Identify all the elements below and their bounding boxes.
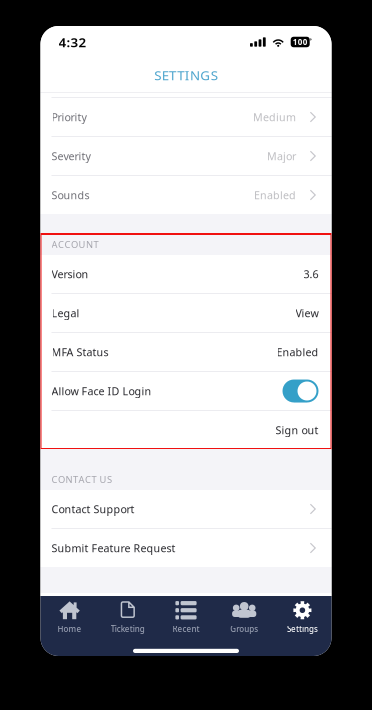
button[interactable]: Sign out (40, 411, 331, 449)
staticText: Medium (253, 110, 296, 124)
staticText: ACCOUNT (51, 238, 98, 251)
staticText: Home (58, 623, 82, 634)
button[interactable]: Recent (157, 599, 215, 641)
button[interactable]: Priority (40, 98, 331, 136)
button[interactable]: Allow Face ID Login (40, 372, 331, 410)
staticText: Major (267, 149, 296, 163)
button[interactable]: Submit Feature Request (40, 529, 331, 567)
staticText: Ticketing (111, 623, 145, 634)
button[interactable]: Ticketing (99, 599, 157, 641)
button[interactable]: Legal (40, 294, 331, 332)
staticText: View (295, 306, 318, 320)
staticText: 4:32 (58, 33, 86, 51)
staticText: SETTINGS (154, 66, 218, 84)
staticText: 100 (293, 37, 308, 47)
button[interactable]: Severity (40, 137, 331, 175)
button[interactable]: Contact Support (40, 490, 331, 528)
staticText: Priority (51, 110, 86, 124)
button[interactable]: Home (40, 599, 99, 641)
staticText: MFA Status (51, 345, 108, 359)
button[interactable]: MFA Status (40, 333, 331, 371)
staticText: Enabled (254, 188, 296, 202)
staticText: Allow Face ID Login (51, 384, 151, 398)
staticText: Severity (51, 149, 90, 163)
staticText: Contact Support (51, 502, 134, 516)
staticText: Recent (172, 623, 199, 634)
button[interactable]: Sounds (40, 176, 331, 214)
staticText: Settings (287, 623, 318, 634)
staticText: CONTACT US (51, 473, 112, 486)
staticText: Enabled (276, 345, 318, 359)
button[interactable]: Groups (215, 599, 273, 641)
staticText: Version (51, 267, 88, 281)
staticText: Groups (230, 623, 258, 634)
button[interactable]: Settings (273, 599, 331, 641)
staticText: Submit Feature Request (51, 541, 175, 555)
button[interactable]: Version (40, 255, 331, 293)
staticText: 3.6 (303, 267, 318, 281)
staticText: Sign out (275, 423, 318, 437)
staticText: Legal (51, 306, 79, 320)
staticText: Sounds (51, 188, 89, 202)
